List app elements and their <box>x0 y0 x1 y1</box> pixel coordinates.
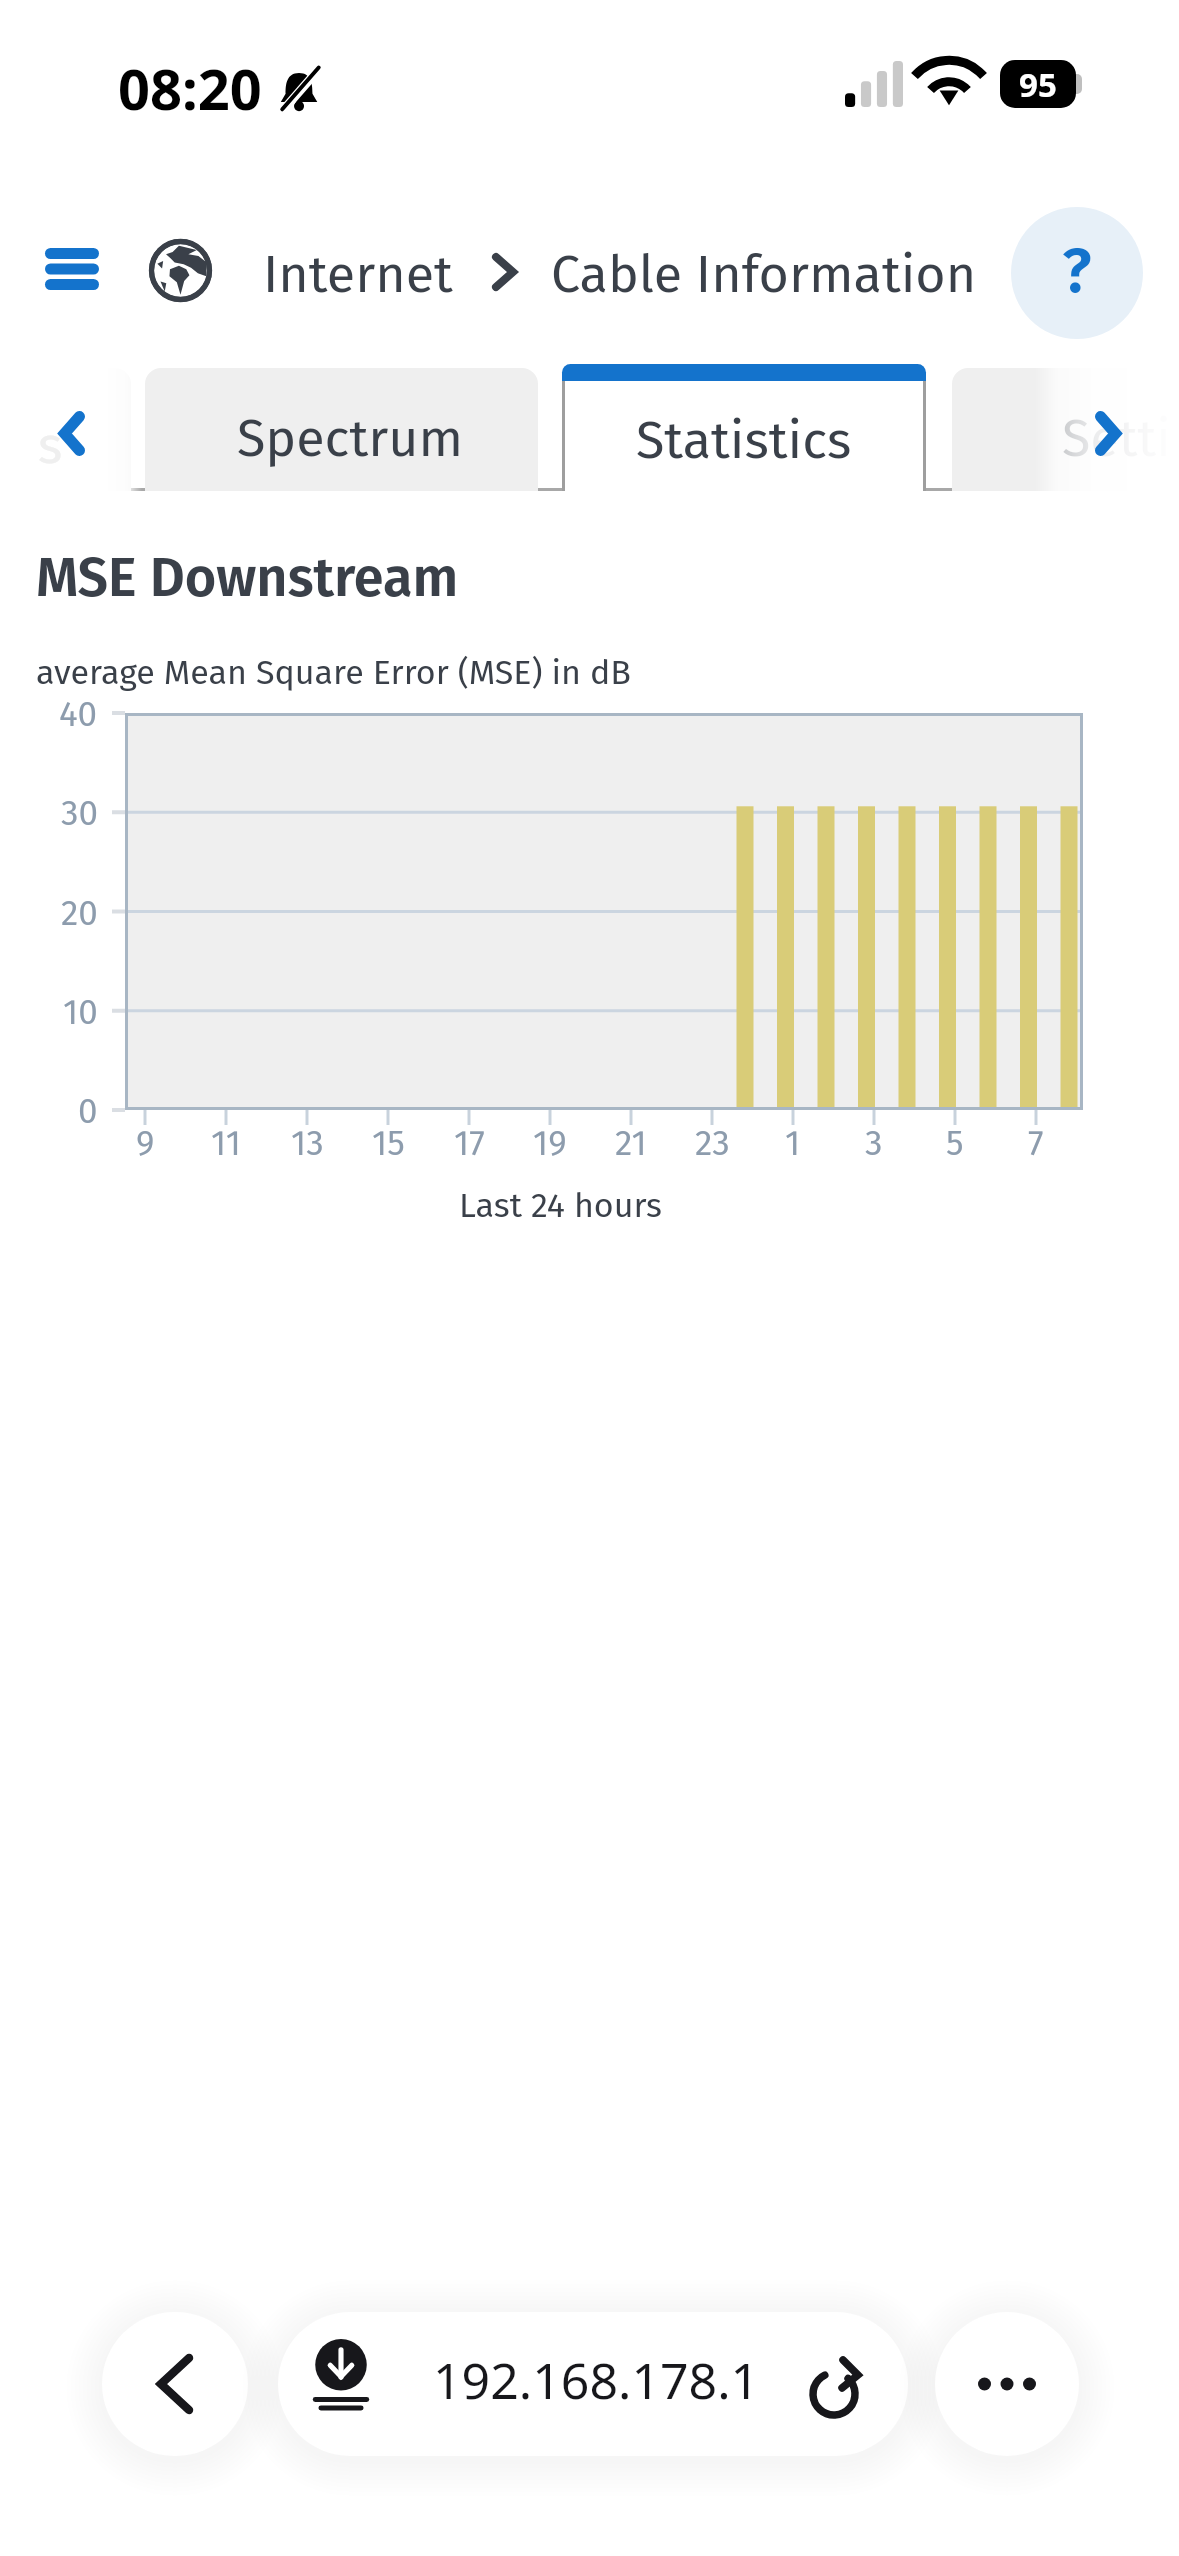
staticText: 7 <box>1028 1122 1044 1164</box>
staticText: 3 <box>865 1122 883 1164</box>
button[interactable]: Help <box>1011 207 1143 339</box>
staticText: 192.168.178.1 <box>433 2346 760 2414</box>
staticText: 20 <box>61 892 98 934</box>
button[interactable]: Spectrum <box>145 368 538 491</box>
staticText: average Mean Square Error (MSE) in dB <box>36 652 632 693</box>
button[interactable]: Settings <box>952 368 1179 491</box>
staticText: 10 <box>63 991 98 1033</box>
staticText: 9 <box>136 1122 155 1164</box>
staticText: 17 <box>454 1122 485 1164</box>
button[interactable]: Statistics <box>562 364 926 491</box>
button[interactable]: More options <box>935 2312 1079 2456</box>
staticText: s <box>38 414 63 476</box>
staticText: ? <box>1062 234 1092 308</box>
staticText: Statistics <box>636 409 852 471</box>
button[interactable]: Previous tabs <box>37 390 107 476</box>
staticText: 1 <box>785 1122 801 1164</box>
button[interactable]: Back <box>102 2312 248 2456</box>
staticText: 23 <box>695 1122 730 1164</box>
staticText: 15 <box>372 1122 405 1164</box>
staticText: Settings <box>1062 407 1179 469</box>
staticText: Cable Information <box>551 243 977 305</box>
staticText: MSE Downstream <box>36 546 459 611</box>
staticText: 21 <box>615 1122 647 1164</box>
staticText: 40 <box>59 693 98 735</box>
staticText: Internet <box>263 243 453 305</box>
staticText: 19 <box>533 1122 567 1164</box>
staticText: 08:20 <box>118 50 262 126</box>
staticText: Last 24 hours <box>459 1185 662 1226</box>
staticText: Spectrum <box>237 407 464 469</box>
button[interactable]: Menu <box>26 238 118 300</box>
staticText: 95 <box>1019 62 1057 107</box>
button[interactable]: Internet <box>145 228 465 314</box>
staticText: 30 <box>61 792 98 834</box>
staticText: 13 <box>291 1122 324 1164</box>
button[interactable]: Address bar: 192.168.178.1 <box>278 2312 908 2456</box>
staticText: 0 <box>78 1090 98 1132</box>
staticText: 11 <box>211 1122 241 1164</box>
staticText: 5 <box>946 1122 964 1164</box>
button[interactable]: Next tabs <box>1073 390 1143 476</box>
